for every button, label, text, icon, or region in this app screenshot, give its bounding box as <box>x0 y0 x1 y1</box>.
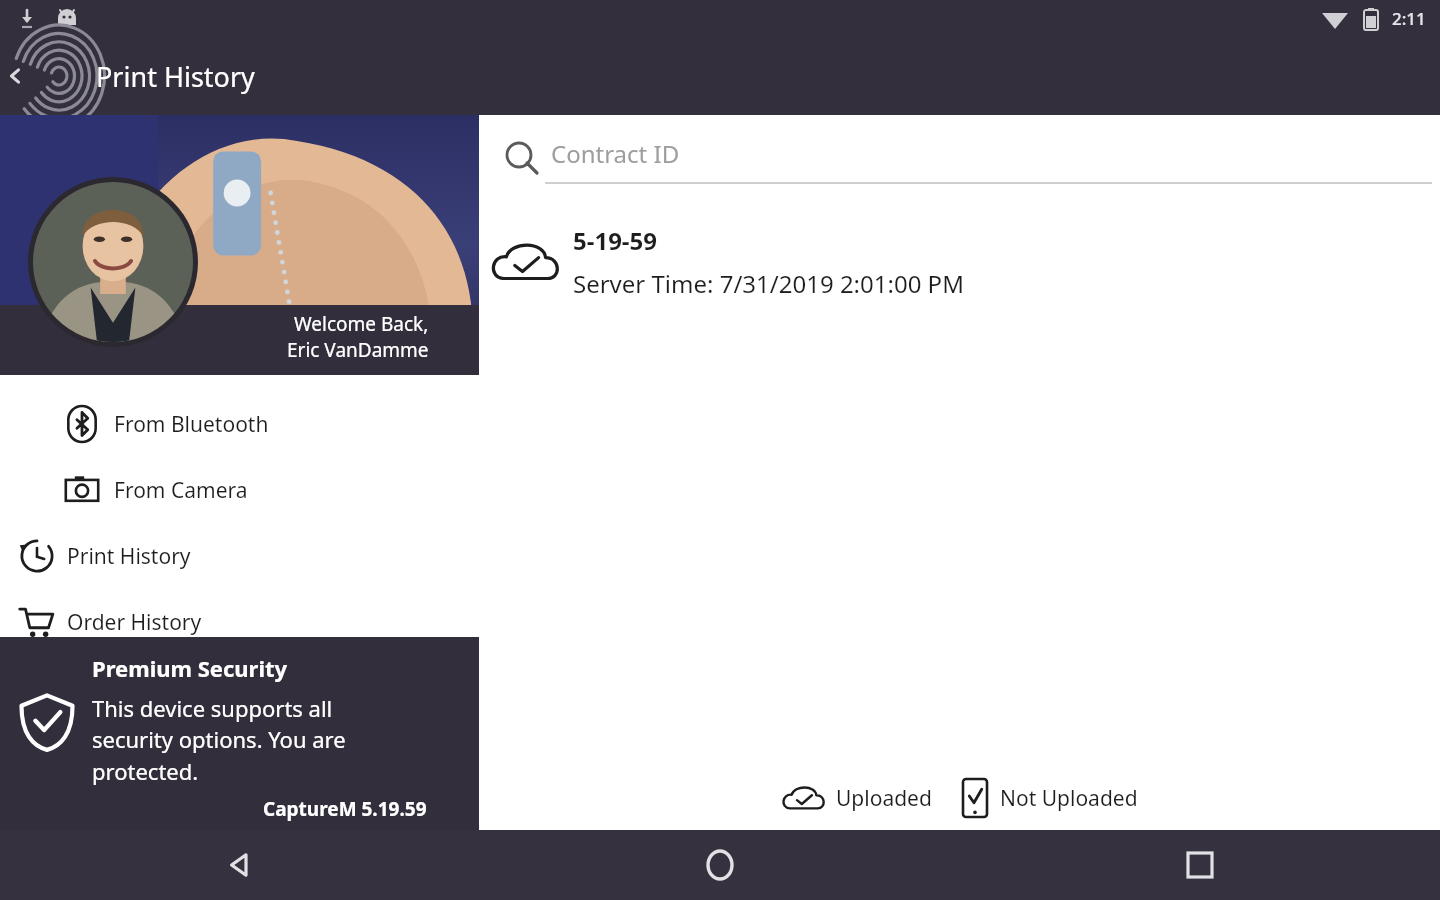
button[interactable]: Back <box>195 830 285 900</box>
button[interactable]: From Bluetooth <box>0 391 479 457</box>
button[interactable]: From Camera <box>0 457 479 523</box>
staticText: Server Time: 7/31/2019 2:01:00 PM <box>573 267 964 300</box>
staticText: Welcome Back, <box>294 311 429 337</box>
button[interactable]: Premium Security <box>0 637 479 830</box>
staticText: From Bluetooth <box>114 410 269 439</box>
staticText: CaptureM 5.19.59 <box>263 796 427 822</box>
staticText: Eric VanDamme <box>287 337 429 363</box>
staticText: Contract ID <box>551 137 680 170</box>
staticText: This device supports all security option… <box>92 693 346 787</box>
staticText: Order History <box>67 608 202 637</box>
button[interactable]: Home <box>675 830 765 900</box>
staticText: From Camera <box>114 476 248 505</box>
button[interactable]: 5-19-59 <box>479 207 1440 317</box>
button[interactable]: Print History <box>0 523 479 589</box>
staticText: Print History <box>67 542 191 571</box>
staticText: Uploaded <box>836 784 932 813</box>
button[interactable]: Order History <box>0 589 479 655</box>
button[interactable]: Recents <box>1155 830 1245 900</box>
staticText: 2:11 <box>1392 7 1426 30</box>
staticText: Premium Security <box>92 653 288 683</box>
button[interactable]: Back <box>2 50 28 102</box>
staticText: Not Uploaded <box>1000 784 1138 813</box>
staticText: 5-19-59 <box>573 224 657 257</box>
staticText: Print History <box>96 58 255 95</box>
